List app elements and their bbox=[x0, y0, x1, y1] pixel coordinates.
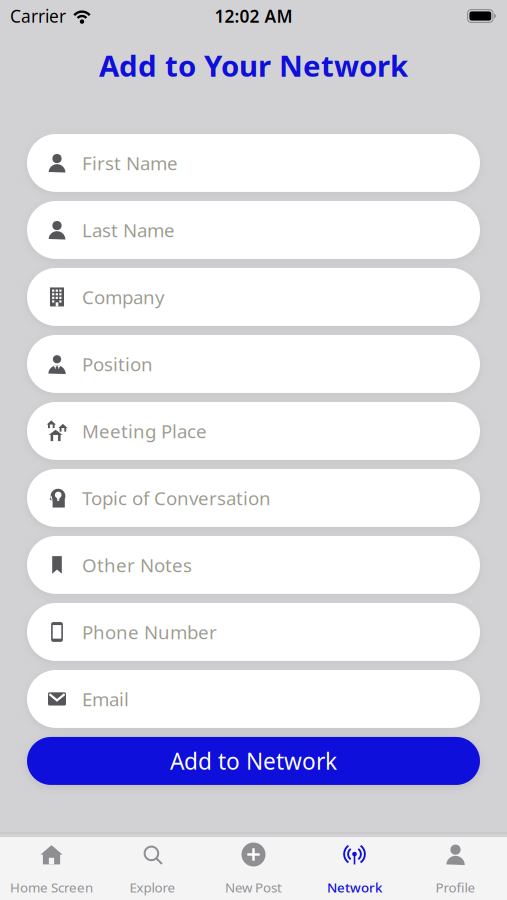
textField[interactable]: Company bbox=[82, 285, 274, 309]
button[interactable]: Profile bbox=[405, 842, 506, 896]
staticText: Topic of Conversation bbox=[82, 486, 271, 510]
button[interactable]: Network bbox=[304, 842, 405, 896]
textField[interactable]: Topic of Conversation bbox=[82, 486, 274, 510]
textField[interactable]: Other Notes bbox=[82, 553, 274, 577]
staticText: Phone Number bbox=[82, 620, 217, 644]
staticText: Carrier bbox=[10, 4, 66, 27]
button[interactable]: New Post bbox=[203, 842, 304, 896]
textField[interactable]: First Name bbox=[82, 151, 274, 175]
staticText: First Name bbox=[82, 151, 178, 175]
staticText: 12:02 AM bbox=[214, 4, 292, 27]
button[interactable]: Add to Network bbox=[0, 737, 507, 785]
textField[interactable]: Email bbox=[82, 687, 274, 711]
staticText: Profile bbox=[435, 878, 475, 896]
button[interactable]: Explore bbox=[102, 842, 203, 896]
button[interactable]: Home Screen bbox=[1, 842, 102, 896]
textField[interactable]: Last Name bbox=[82, 218, 274, 242]
textField[interactable]: Phone Number bbox=[82, 620, 274, 644]
staticText: Other Notes bbox=[82, 553, 192, 577]
staticText: Add to Your Network bbox=[99, 46, 408, 85]
staticText: New Post bbox=[225, 878, 282, 896]
textField[interactable]: Meeting Place bbox=[82, 419, 274, 443]
staticText: Home Screen bbox=[10, 878, 93, 896]
staticText: Position bbox=[82, 352, 153, 376]
staticText: Email bbox=[82, 687, 129, 711]
staticText: Company bbox=[82, 285, 165, 309]
staticText: Last Name bbox=[82, 218, 175, 242]
staticText: Meeting Place bbox=[82, 419, 207, 443]
staticText: Explore bbox=[129, 878, 175, 896]
staticText: Network bbox=[327, 878, 382, 896]
staticText: Add to Network bbox=[170, 746, 337, 776]
textField[interactable]: Position bbox=[82, 352, 274, 376]
